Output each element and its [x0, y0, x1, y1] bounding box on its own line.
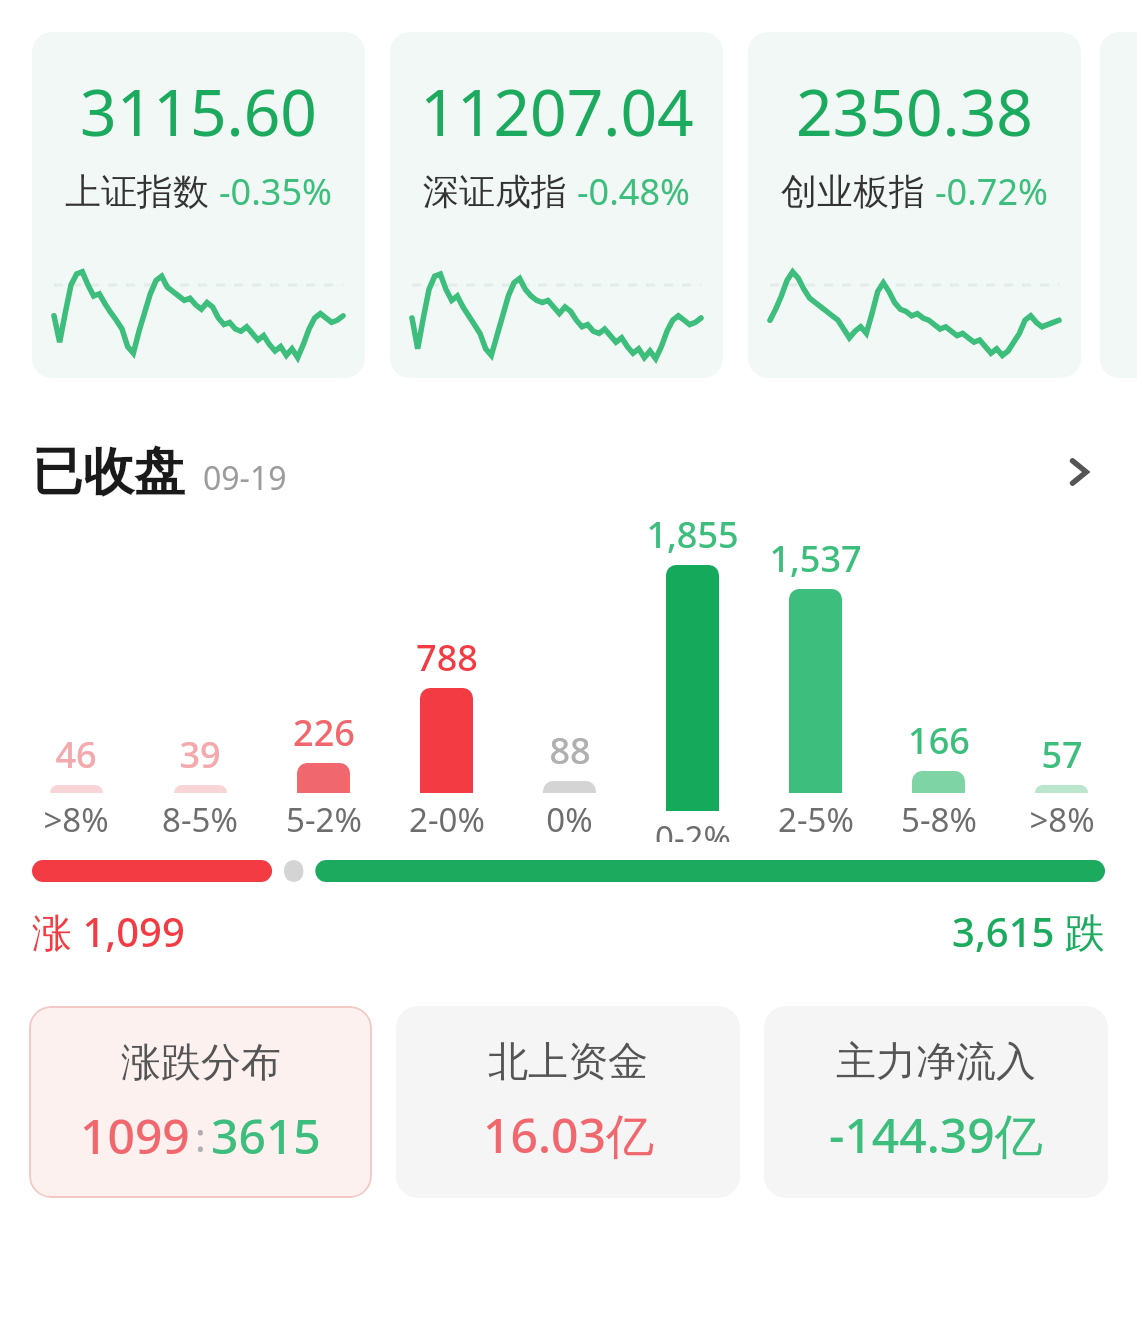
staticText: 166	[908, 716, 970, 765]
staticText: 0%	[546, 797, 593, 842]
staticText: 上证指数	[65, 169, 209, 214]
button[interactable]: 北上资金	[396, 1006, 740, 1198]
staticText: 3615	[211, 1103, 321, 1168]
staticText: 创业板指	[781, 169, 925, 214]
staticText: 3115.60	[80, 68, 317, 155]
staticText: 1099	[80, 1103, 190, 1168]
staticText: 2350.38	[796, 68, 1033, 155]
staticText: 1,855	[646, 510, 739, 559]
button[interactable]: 1,537	[754, 510, 877, 842]
button[interactable]: 788	[385, 510, 508, 842]
staticText: 46	[55, 730, 97, 779]
staticText: 5-2%	[286, 797, 362, 842]
staticText: 1,537	[769, 534, 862, 583]
staticText: 3,615 跌	[952, 904, 1105, 959]
staticText: 主力净流入	[836, 1036, 1036, 1086]
button[interactable]: 39	[138, 510, 262, 842]
button[interactable]: 11207.04	[390, 32, 723, 378]
button[interactable]: 3115.60	[32, 32, 365, 378]
staticText: 2-0%	[409, 797, 485, 842]
button[interactable]: 166	[877, 510, 1000, 842]
staticText: 涨 1,099	[32, 904, 185, 959]
staticText: -0.72%	[935, 167, 1048, 216]
staticText: 788	[416, 633, 478, 682]
staticText: 39	[179, 730, 221, 779]
staticText: 深证成指	[423, 169, 567, 214]
button[interactable]: 1,855	[631, 510, 754, 842]
staticText: 09-19	[203, 456, 287, 500]
staticText: 0-2%	[655, 815, 731, 842]
staticText: 57	[1041, 730, 1083, 779]
staticText: -144.39亿	[829, 1102, 1043, 1168]
button[interactable]: 已收盘	[0, 434, 1137, 510]
staticText: 涨跌分布	[121, 1037, 281, 1087]
staticText: >8%	[1029, 797, 1095, 842]
staticText: 5-8%	[901, 797, 977, 842]
button[interactable]: 57	[1000, 510, 1123, 842]
button[interactable]: 涨跌分布	[29, 1006, 372, 1198]
other: More	[1043, 436, 1115, 508]
staticText: 8-5%	[162, 797, 238, 842]
button[interactable]: 46	[14, 510, 138, 842]
staticText: 2-5%	[778, 797, 854, 842]
staticText: 11207.04	[420, 68, 694, 155]
button[interactable]: 88	[508, 510, 631, 842]
staticText: 北上资金	[488, 1036, 648, 1086]
staticText: :	[195, 1109, 206, 1163]
button[interactable]: 2350.38	[748, 32, 1081, 378]
staticText: -0.48%	[577, 167, 690, 216]
button[interactable]: 226	[262, 510, 385, 842]
staticText: 88	[549, 726, 591, 775]
staticText: 226	[293, 708, 355, 757]
staticText: 已收盘	[32, 440, 185, 504]
staticText: -0.35%	[219, 167, 332, 216]
staticText: 16.03亿	[483, 1102, 654, 1168]
button[interactable]: 主力净流入	[764, 1006, 1108, 1198]
staticText: >8%	[43, 797, 109, 842]
